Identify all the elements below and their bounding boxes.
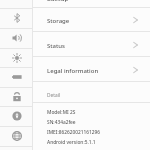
button[interactable]: Storage [33, 7, 150, 32]
button[interactable]: Status [33, 32, 150, 57]
button[interactable]: Security [0, 87, 33, 107]
staticText: Detail [47, 92, 61, 99]
staticText: SN:434a2fee [47, 119, 76, 126]
button[interactable]: Battery [0, 67, 33, 87]
staticText: IMEI:862620021161296 [47, 129, 100, 136]
staticText: Backup [47, 0, 69, 3]
button[interactable]: Display [0, 48, 33, 68]
staticText: Storage [47, 17, 70, 25]
staticText: Android version:5.1.1 [47, 139, 96, 146]
staticText: Status [47, 42, 66, 50]
button[interactable]: Language [0, 126, 33, 146]
staticText: Legal information [47, 67, 99, 75]
button[interactable]: Location [0, 106, 33, 126]
button[interactable]: Bluetooth [0, 8, 33, 28]
button[interactable]: Sound [0, 28, 33, 48]
staticText: Model:MI 2S [47, 109, 76, 116]
button[interactable]: Legal information [33, 57, 150, 82]
